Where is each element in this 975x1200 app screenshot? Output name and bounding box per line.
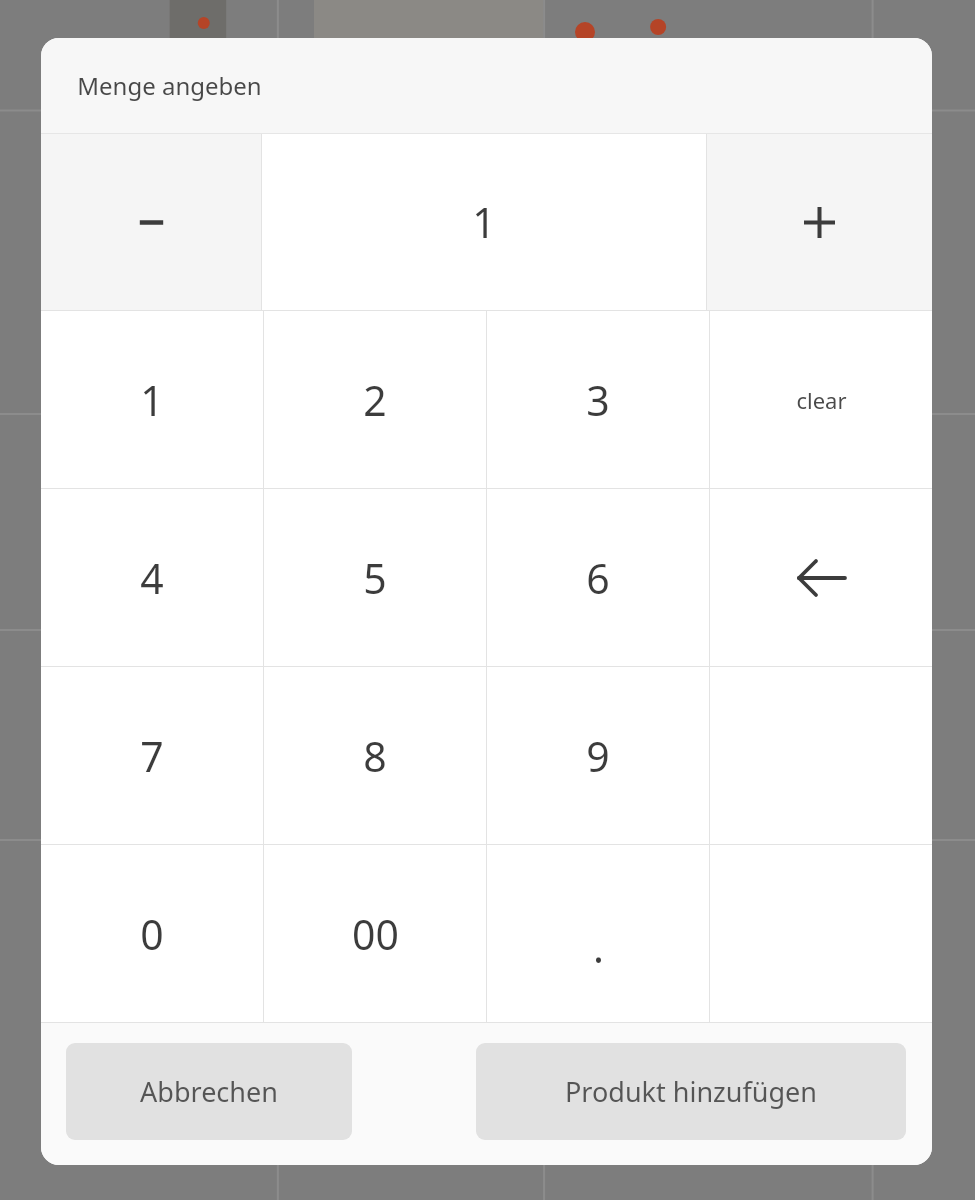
staticText: 00 [352, 906, 399, 962]
button[interactable]: 1 [41, 311, 263, 488]
button[interactable]: 2 [264, 311, 486, 488]
staticText: Abbrechen [140, 1073, 278, 1110]
staticText: 4 [140, 550, 164, 606]
staticText: 1 [140, 372, 164, 428]
button[interactable]: 1 [262, 134, 706, 310]
button[interactable]: clear [710, 311, 932, 488]
staticText: . [593, 919, 604, 975]
button[interactable]: Backspace [710, 489, 932, 666]
button[interactable]: 5 [264, 489, 486, 666]
button[interactable]: 0 [41, 845, 263, 1022]
button[interactable]: 3 [487, 311, 709, 488]
staticText: Produkt hinzufügen [565, 1073, 817, 1110]
staticText: 9 [586, 728, 610, 784]
staticText: 6 [586, 550, 610, 606]
staticText: 3 [586, 372, 610, 428]
staticText: Menge angeben [77, 69, 262, 102]
button[interactable]: 9 [487, 667, 709, 844]
staticText: clear [796, 385, 847, 415]
button[interactable]: . [487, 845, 709, 1022]
button[interactable]: Decrease quantity [41, 134, 261, 310]
button[interactable]: Abbrechen [66, 1043, 352, 1140]
button[interactable]: 8 [264, 667, 486, 844]
staticText: 0 [140, 906, 164, 962]
button[interactable]: 00 [264, 845, 486, 1022]
button[interactable]: Increase quantity [707, 134, 932, 310]
staticText: 8 [363, 728, 387, 784]
staticText: 2 [363, 372, 387, 428]
button[interactable]: Produkt hinzufügen [476, 1043, 906, 1140]
button[interactable]: 7 [41, 667, 263, 844]
button[interactable]: 4 [41, 489, 263, 666]
staticText: 7 [140, 728, 164, 784]
button[interactable]: 6 [487, 489, 709, 666]
staticText: 1 [472, 194, 496, 250]
staticText: 5 [363, 550, 387, 606]
